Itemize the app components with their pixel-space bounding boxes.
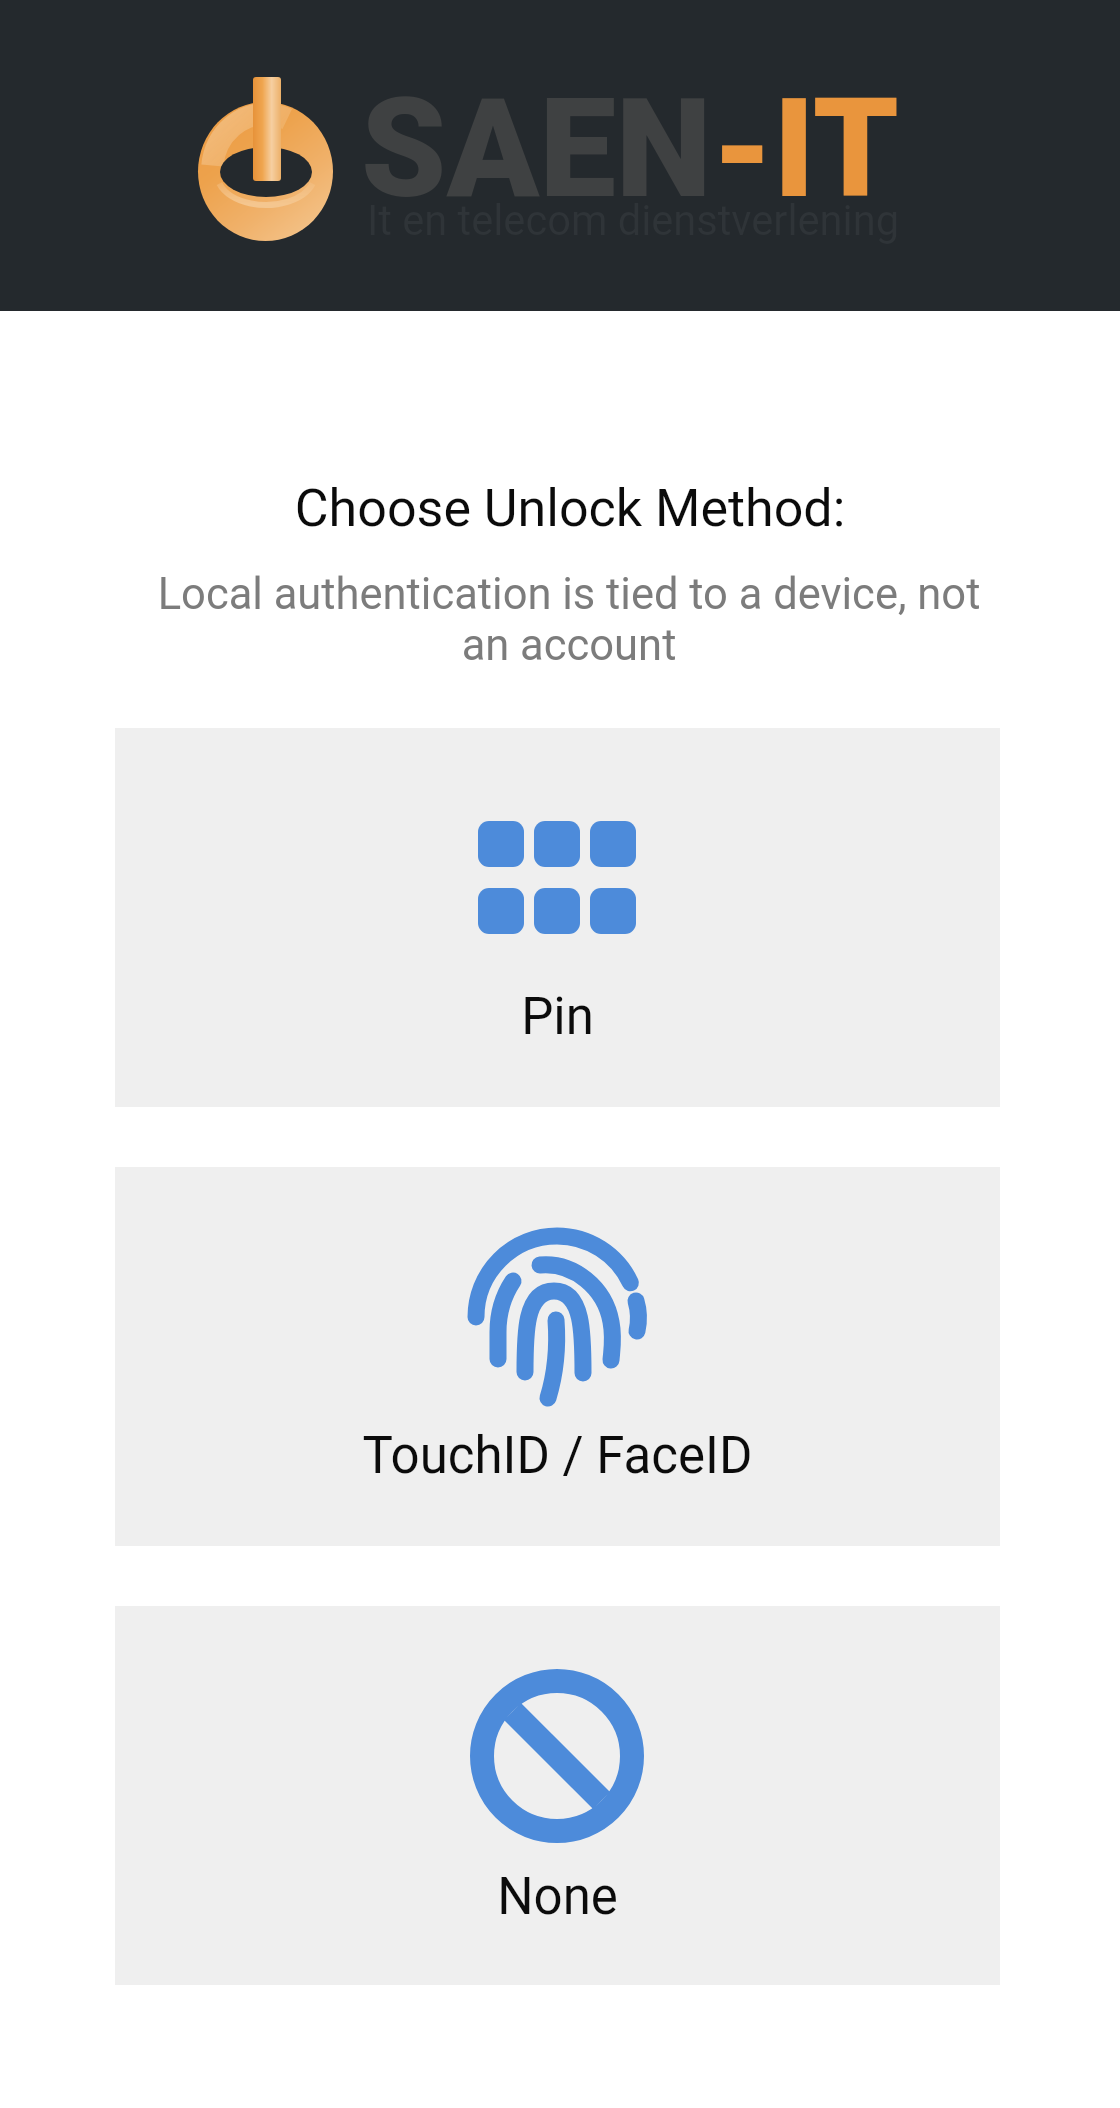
other: Fingerprint [467, 1226, 647, 1406]
button[interactable]: PIN keypad [115, 728, 1000, 1107]
staticText: -IT [712, 69, 899, 229]
other: PIN keypad [478, 821, 636, 934]
staticText: Local authentication is tied to a device… [149, 569, 989, 670]
staticText: It en telecom dienstverlening [367, 196, 899, 245]
staticText: SAEN [361, 69, 712, 229]
other: SAEN-IT logo [196, 74, 336, 244]
staticText: TouchID / FaceID [115, 1426, 1000, 1486]
button[interactable]: Fingerprint [115, 1167, 1000, 1546]
staticText: Choose Unlock Method: [10, 478, 1120, 539]
button[interactable]: No unlock method [115, 1606, 1000, 1985]
staticText: Pin [115, 987, 1000, 1047]
staticText: None [115, 1867, 1000, 1927]
other: No unlock method [470, 1669, 644, 1843]
